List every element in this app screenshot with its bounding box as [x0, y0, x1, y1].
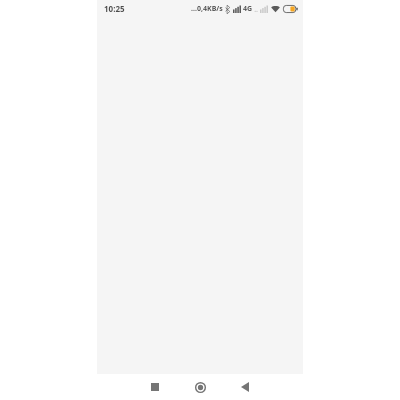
button[interactable]: Recent apps	[138, 374, 172, 400]
staticText: 4G	[243, 4, 253, 14]
button[interactable]: Back	[228, 374, 262, 400]
staticText: 10:25	[104, 3, 125, 14]
button[interactable]: Home	[183, 374, 217, 400]
staticText: …0,4KB/s	[191, 4, 223, 14]
